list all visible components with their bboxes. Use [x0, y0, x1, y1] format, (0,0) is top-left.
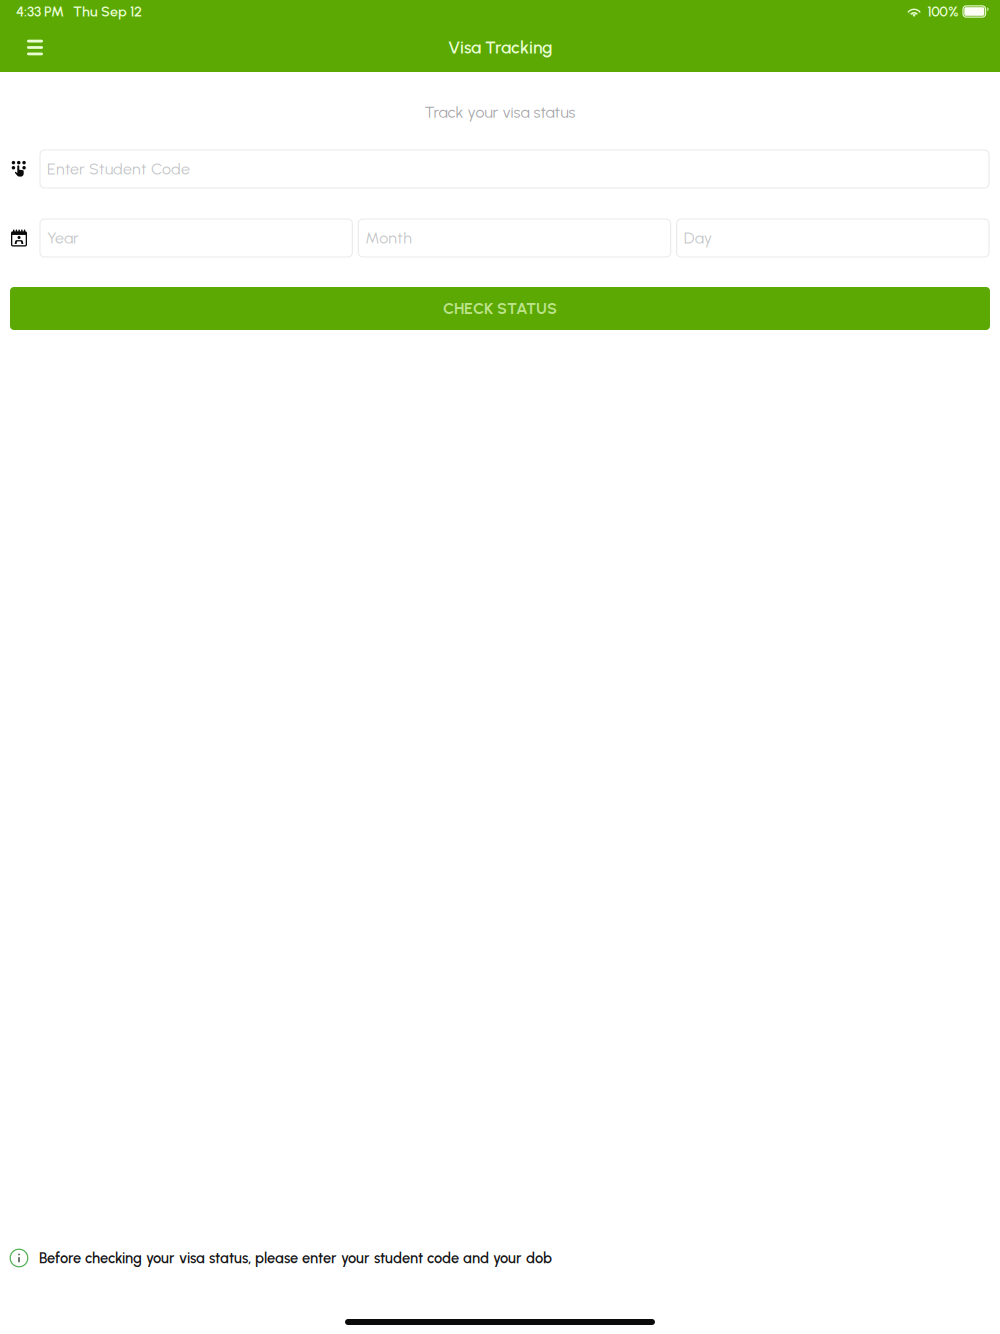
- staticText: CHECK STATUS: [443, 299, 557, 318]
- staticText: Visa Tracking: [448, 37, 552, 58]
- staticText: Thu Sep 12: [73, 3, 142, 20]
- staticText: Day: [684, 228, 712, 248]
- staticText: Track your visa status: [424, 103, 575, 122]
- staticText: 100%: [927, 3, 958, 20]
- staticText: Before checking your visa status, please…: [39, 1249, 552, 1267]
- staticText: Enter Student Code: [47, 159, 190, 179]
- button[interactable]: CHECK STATUS: [10, 287, 990, 330]
- staticText: 4:33 PM: [16, 3, 64, 20]
- staticText: Month: [365, 228, 412, 248]
- button[interactable]: Menu: [14, 26, 56, 68]
- staticText: Year: [47, 228, 79, 248]
